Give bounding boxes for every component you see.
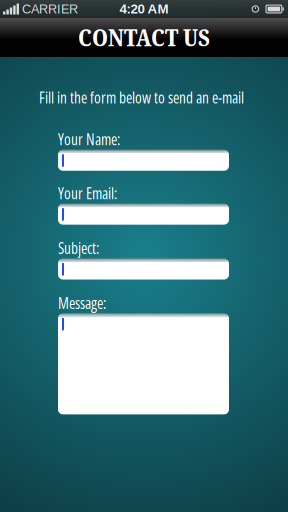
staticText: 4:20 AM xyxy=(119,2,168,16)
staticText: CARRIER xyxy=(22,2,78,16)
staticText: Your Name: xyxy=(58,129,120,150)
button[interactable] xyxy=(58,150,229,171)
staticText: Fill in the form below to send an e-mail xyxy=(39,87,244,108)
button[interactable] xyxy=(58,313,229,414)
button[interactable] xyxy=(58,204,229,225)
staticText: Your Email: xyxy=(58,183,117,204)
staticText: Subject: xyxy=(58,238,99,258)
staticText: CONTACT US xyxy=(78,22,210,53)
staticText: Message: xyxy=(58,292,106,313)
button[interactable] xyxy=(58,258,229,279)
